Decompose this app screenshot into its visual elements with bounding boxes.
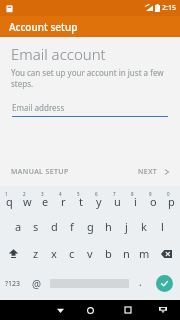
button[interactable]: 4 [54, 186, 72, 213]
button[interactable]: g [81, 213, 99, 240]
button[interactable]: MANUAL SETUP [0, 165, 75, 179]
staticText: z [33, 246, 39, 261]
staticText: p [168, 194, 175, 209]
button[interactable]: s [27, 213, 45, 240]
staticText: . [139, 275, 142, 289]
staticText: s [33, 219, 39, 234]
staticText: e [42, 194, 49, 209]
button[interactable]: 7 [108, 186, 126, 213]
staticText: l [161, 219, 164, 234]
button[interactable]: f [63, 213, 81, 240]
staticText: g [87, 219, 94, 234]
button[interactable]: 8 [126, 186, 144, 213]
button[interactable]: z [27, 240, 45, 267]
staticText: c [69, 246, 75, 261]
staticText: k [141, 219, 147, 234]
staticText: m [139, 246, 150, 261]
button[interactable]: k [135, 213, 153, 240]
button[interactable]: Back [52, 302, 68, 318]
staticText: 8 [131, 191, 134, 197]
staticText: i [134, 194, 137, 209]
staticText: o [150, 194, 157, 209]
staticText: Email account [11, 44, 106, 64]
button[interactable]: . [131, 267, 149, 300]
button[interactable]: Email address [12, 102, 168, 117]
staticText: w [23, 194, 32, 209]
staticText: r [61, 194, 66, 209]
staticText: 1 [5, 191, 8, 197]
button[interactable]: a [9, 213, 27, 240]
staticText: t [79, 194, 83, 209]
staticText: x [51, 246, 57, 261]
staticText: 4 [59, 191, 62, 197]
staticText: Email address [12, 102, 65, 113]
staticText: 7 [113, 191, 116, 197]
button[interactable]: c [63, 240, 81, 267]
button[interactable]: 3 [36, 186, 54, 213]
staticText: 6 [95, 191, 98, 197]
button[interactable]: Hide keyboard [155, 302, 171, 318]
staticText: 9 [149, 191, 152, 197]
staticText: f [70, 219, 74, 234]
staticText: ?123 [5, 279, 21, 289]
staticText: y [96, 194, 102, 209]
staticText: 3 [41, 191, 44, 197]
button[interactable]: Home [82, 302, 98, 318]
button[interactable]: d [45, 213, 63, 240]
button[interactable]: Recents [120, 302, 136, 318]
staticText: a [15, 219, 22, 234]
button[interactable]: NEXT [132, 165, 180, 179]
button[interactable]: 0 [162, 186, 180, 213]
staticText: q [6, 194, 13, 209]
staticText: You can set up your account in just a fe… [11, 67, 168, 89]
staticText: h [105, 219, 112, 234]
staticText: u [114, 194, 121, 209]
button[interactable]: n [117, 240, 135, 267]
button[interactable]: 5 [72, 186, 90, 213]
staticText: n [123, 246, 130, 261]
button[interactable]: Space [47, 267, 131, 300]
button[interactable]: 2 [18, 186, 36, 213]
staticText: j [125, 219, 128, 234]
button[interactable]: 1 [0, 186, 18, 213]
staticText: 2 [23, 191, 26, 197]
staticText: @ [32, 277, 41, 291]
button[interactable]: Backspace [153, 240, 180, 267]
staticText: v [87, 246, 93, 261]
button[interactable]: Done [149, 267, 180, 300]
button[interactable]: ?123 [0, 267, 25, 300]
staticText: MANUAL SETUP [11, 167, 69, 177]
button[interactable]: Shift [0, 240, 27, 267]
button[interactable]: l [153, 213, 171, 240]
button[interactable]: j [117, 213, 135, 240]
staticText: d [51, 219, 58, 234]
button[interactable]: v [81, 240, 99, 267]
button[interactable]: h [99, 213, 117, 240]
button[interactable]: x [45, 240, 63, 267]
button[interactable]: m [135, 240, 153, 267]
button[interactable]: @ [25, 267, 47, 300]
staticText: b [105, 246, 112, 261]
staticText: 2:15 [162, 3, 176, 13]
button[interactable]: b [99, 240, 117, 267]
staticText: 0 [167, 191, 170, 197]
button[interactable]: 6 [90, 186, 108, 213]
button[interactable]: 9 [144, 186, 162, 213]
staticText: Account setup [9, 20, 78, 34]
staticText: NEXT [138, 167, 158, 177]
staticText: 5 [77, 191, 80, 197]
